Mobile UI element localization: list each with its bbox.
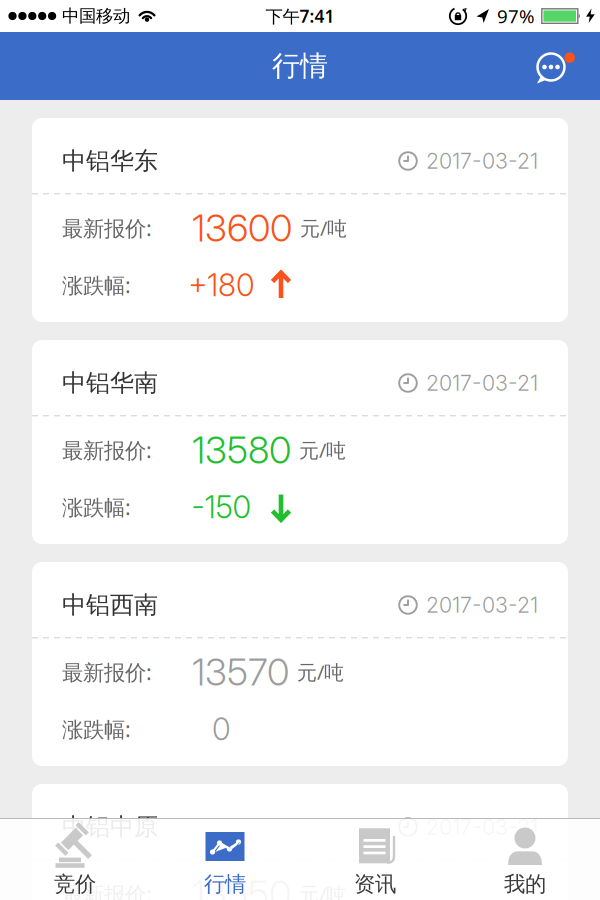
staticText: 13550 (192, 871, 291, 900)
staticText: 涨跌幅: (62, 493, 131, 521)
staticText: 元/吨 (299, 437, 346, 463)
staticText: 最新报价: (62, 658, 152, 686)
button[interactable]: 行情 (150, 818, 300, 900)
staticText: 我的 (504, 871, 546, 897)
staticText: 行情 (204, 871, 246, 897)
staticText: +180 (188, 266, 255, 303)
button[interactable]: 资讯 (300, 818, 450, 900)
staticText: 中铝华南 (62, 368, 158, 398)
staticText: 行情 (272, 49, 328, 83)
button[interactable]: 竞价 (0, 818, 150, 900)
staticText: 2017-03-21 (426, 148, 538, 174)
staticText: 97% (497, 4, 535, 28)
staticText: 2017-03-21 (426, 814, 538, 840)
staticText: 涨跌幅: (62, 271, 131, 299)
staticText: 中国移动 (62, 5, 130, 27)
staticText: 元/吨 (300, 215, 347, 241)
staticText: 0 (212, 710, 231, 747)
staticText: 元/吨 (299, 881, 346, 900)
staticText: -150 (191, 488, 251, 525)
staticText: 2017-03-21 (426, 592, 538, 618)
button[interactable]: 中铝中原 (32, 784, 568, 900)
staticText: 元/吨 (297, 659, 344, 685)
button[interactable]: 中铝西南 (32, 562, 568, 766)
staticText: 最新报价: (62, 214, 152, 242)
staticText: 最新报价: (62, 880, 152, 900)
staticText: 13570 (192, 649, 289, 695)
button[interactable]: 我的 (450, 818, 600, 900)
staticText: 下午7:41 (265, 4, 334, 27)
staticText: 13580 (192, 427, 291, 473)
staticText: 2017-03-21 (426, 370, 538, 396)
button[interactable]: 中铝华南 (32, 340, 568, 544)
staticText: 中铝华东 (62, 146, 158, 176)
staticText: 涨跌幅: (62, 715, 131, 743)
staticText: 中铝西南 (62, 590, 158, 620)
staticText: 13600 (192, 205, 292, 251)
button[interactable]: 中铝华东 (32, 118, 568, 322)
staticText: 资讯 (354, 871, 396, 897)
staticText: 中铝中原 (62, 812, 158, 842)
button[interactable]: 消息 (528, 43, 574, 89)
staticText: 竞价 (54, 871, 96, 897)
staticText: 最新报价: (62, 436, 152, 464)
